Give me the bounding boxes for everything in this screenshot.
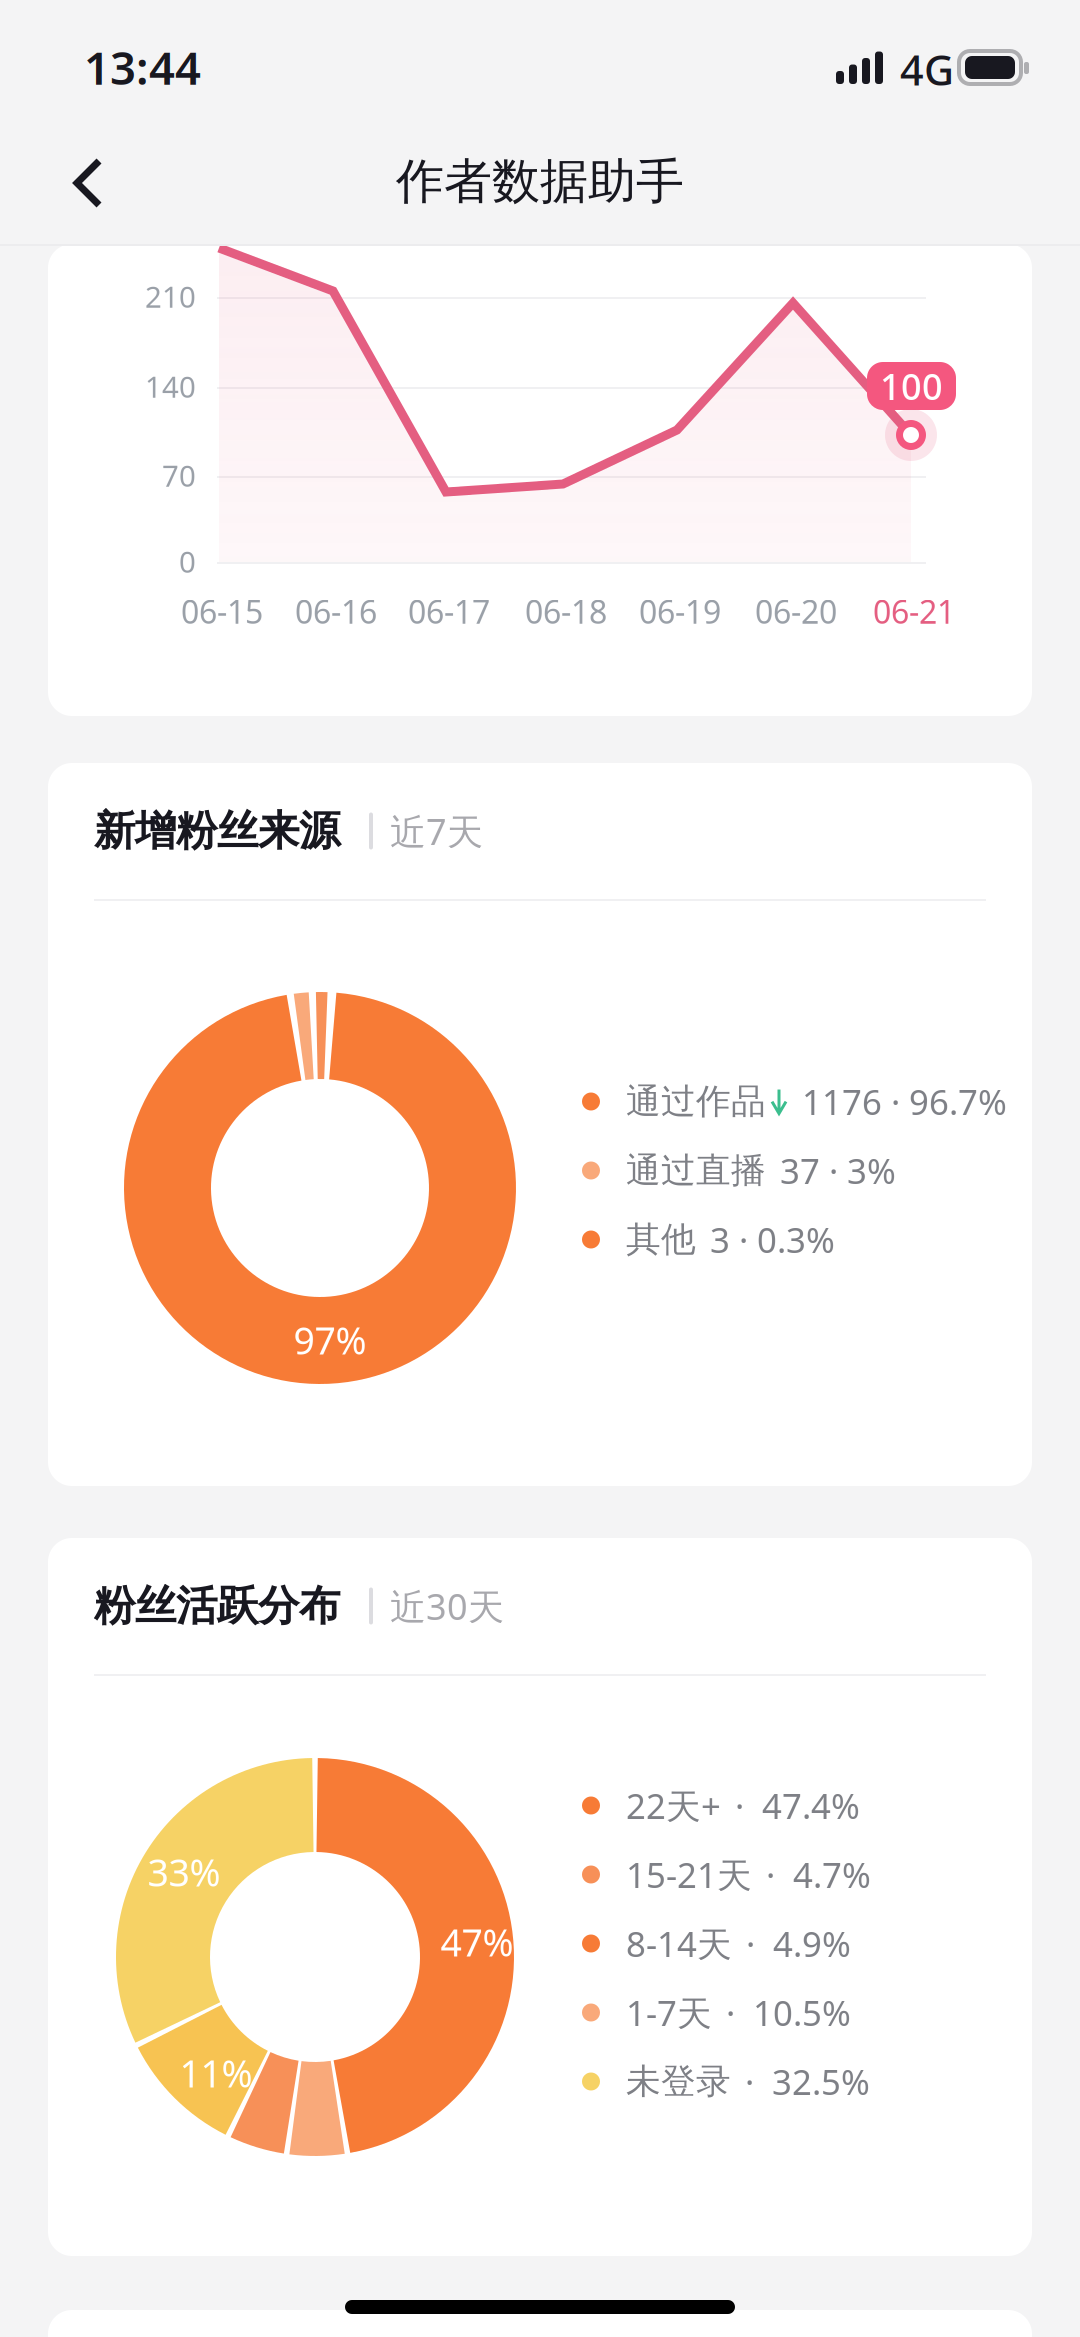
staticText: 06-15 <box>181 590 263 632</box>
staticText: 37 · 3% <box>780 1147 896 1193</box>
staticText: 作者数据助手 <box>396 152 684 211</box>
staticText: 70 <box>162 456 196 495</box>
staticText: 97% <box>293 1315 366 1365</box>
staticText: 22天+ <box>626 1782 721 1828</box>
staticText: 其他 <box>626 1218 696 1261</box>
staticText: · 47.4% <box>735 1782 860 1828</box>
staticText: 06-21 <box>873 590 955 632</box>
staticText: 8-14天 <box>626 1920 732 1966</box>
staticText: 1176 · 96.7% <box>802 1078 1007 1124</box>
staticText: 4G <box>900 42 954 97</box>
staticText: 47% <box>440 1917 513 1967</box>
staticText: · 4.7% <box>766 1851 871 1897</box>
staticText: 06-17 <box>408 590 490 632</box>
staticText: 新增粉丝来源 <box>94 806 340 856</box>
staticText: · 10.5% <box>726 1989 851 2035</box>
staticText: 140 <box>145 367 196 406</box>
staticText: 3 · 0.3% <box>710 1216 835 1262</box>
staticText: 11% <box>179 2048 252 2098</box>
button[interactable]: 返回 <box>37 131 139 235</box>
staticText: 通过作品 <box>626 1080 766 1123</box>
staticText: 33% <box>147 1847 220 1897</box>
staticText: 06-20 <box>755 590 837 632</box>
staticText: · 32.5% <box>745 2058 870 2104</box>
staticText: 06-18 <box>525 590 607 632</box>
staticText: 未登录 <box>626 2060 731 2103</box>
staticText: 06-16 <box>295 590 377 632</box>
staticText: · 4.9% <box>746 1920 851 1966</box>
staticText: 通过直播 <box>626 1149 766 1192</box>
staticText: 210 <box>145 277 196 316</box>
staticText: 近30天 <box>390 1582 504 1630</box>
staticText: 0 <box>179 542 196 581</box>
staticText: 粉丝活跃分布 <box>94 1581 340 1631</box>
staticText: 15-21天 <box>626 1851 752 1897</box>
staticText: 06-19 <box>639 590 721 632</box>
staticText: 1-7天 <box>626 1989 712 2035</box>
staticText: 近7天 <box>390 807 483 855</box>
staticText: 13:44 <box>84 37 201 97</box>
staticText: 100 <box>880 362 943 410</box>
